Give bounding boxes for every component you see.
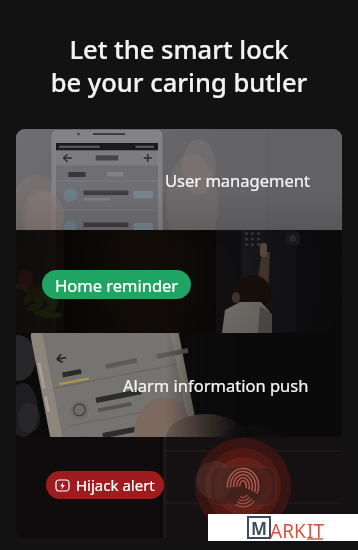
button[interactable]: Home reminder — [42, 270, 191, 299]
button[interactable]: User management — [16, 129, 342, 230]
staticText: ARK — [270, 518, 306, 544]
staticText: Let the smart lock be your caring butler — [0, 32, 358, 99]
button[interactable]: Hijack alert — [16, 437, 342, 538]
button[interactable]: Home reminder — [16, 230, 342, 333]
button[interactable]: Alarm information push — [16, 333, 342, 437]
staticText: Home reminder — [55, 274, 179, 296]
button[interactable]: Hijack alert — [46, 471, 164, 499]
staticText: IT — [307, 518, 325, 544]
staticText: Hijack alert — [76, 475, 155, 495]
staticText: Alarm information push — [123, 374, 309, 396]
staticText: M — [251, 517, 268, 538]
staticText: User management — [165, 169, 310, 191]
